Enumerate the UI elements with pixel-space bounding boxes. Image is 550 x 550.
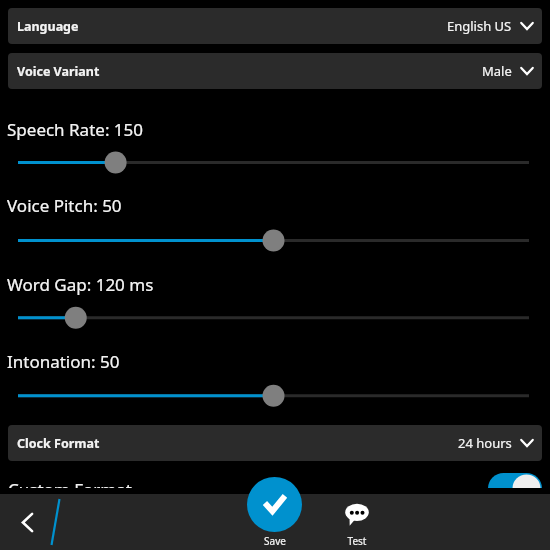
button[interactable]: Voice Variant: [8, 53, 542, 89]
staticText: Custom Format: [8, 478, 132, 488]
staticText: English US: [447, 17, 512, 35]
button[interactable]: Save: [247, 477, 302, 547]
button[interactable]: Clock Format: [8, 425, 542, 461]
staticText: Word Gap: 120 ms: [7, 273, 154, 296]
staticText: Male: [482, 62, 512, 80]
staticText: Speech Rate: 150: [7, 118, 144, 141]
staticText: Test: [331, 534, 383, 548]
staticText: Language: [17, 18, 79, 35]
button[interactable]: Custom Format: [0, 470, 550, 488]
staticText: 24 hours: [458, 434, 512, 452]
staticText: Save: [255, 534, 295, 548]
staticText: Voice Pitch: 50: [7, 194, 122, 217]
staticText: Clock Format: [17, 435, 100, 452]
button[interactable]: Language: [8, 8, 542, 44]
other: Save: [247, 477, 302, 532]
button[interactable]: Test: [331, 499, 383, 549]
button[interactable]: Back: [11, 506, 44, 539]
staticText: Intonation: 50: [7, 350, 120, 373]
staticText: Voice Variant: [17, 63, 100, 80]
